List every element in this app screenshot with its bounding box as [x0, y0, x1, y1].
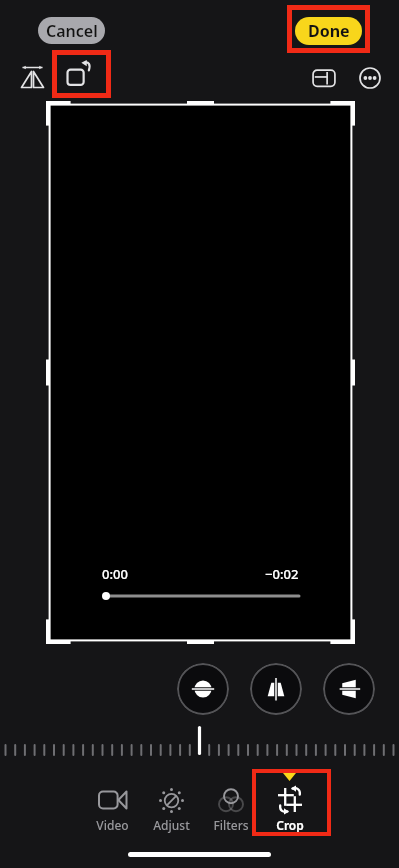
button[interactable]: Vertical perspective	[250, 663, 302, 715]
button[interactable]: Filters	[201, 779, 260, 831]
button[interactable]: Adjust	[142, 779, 201, 831]
staticText: 0:00	[102, 565, 128, 583]
staticText: Video	[96, 817, 129, 833]
button[interactable]: Cancel	[38, 17, 105, 44]
button[interactable]: Video	[83, 779, 142, 831]
button[interactable]: Straighten	[177, 663, 229, 715]
button[interactable]: Crop	[260, 779, 319, 831]
button[interactable]: More options	[348, 56, 392, 100]
button[interactable]: Horizontal perspective	[323, 663, 375, 715]
button[interactable]: Aspect ratio	[302, 56, 346, 100]
staticText: Crop	[276, 817, 304, 833]
button[interactable]: Flip horizontally	[10, 54, 54, 98]
staticText: −0:02	[265, 565, 299, 583]
staticText: Filters	[213, 817, 249, 833]
button[interactable]: Rotate	[58, 52, 102, 96]
staticText: Adjust	[153, 817, 190, 833]
staticText: Cancel	[46, 20, 98, 42]
button[interactable]: Done	[295, 17, 362, 45]
staticText: Done	[308, 20, 350, 42]
